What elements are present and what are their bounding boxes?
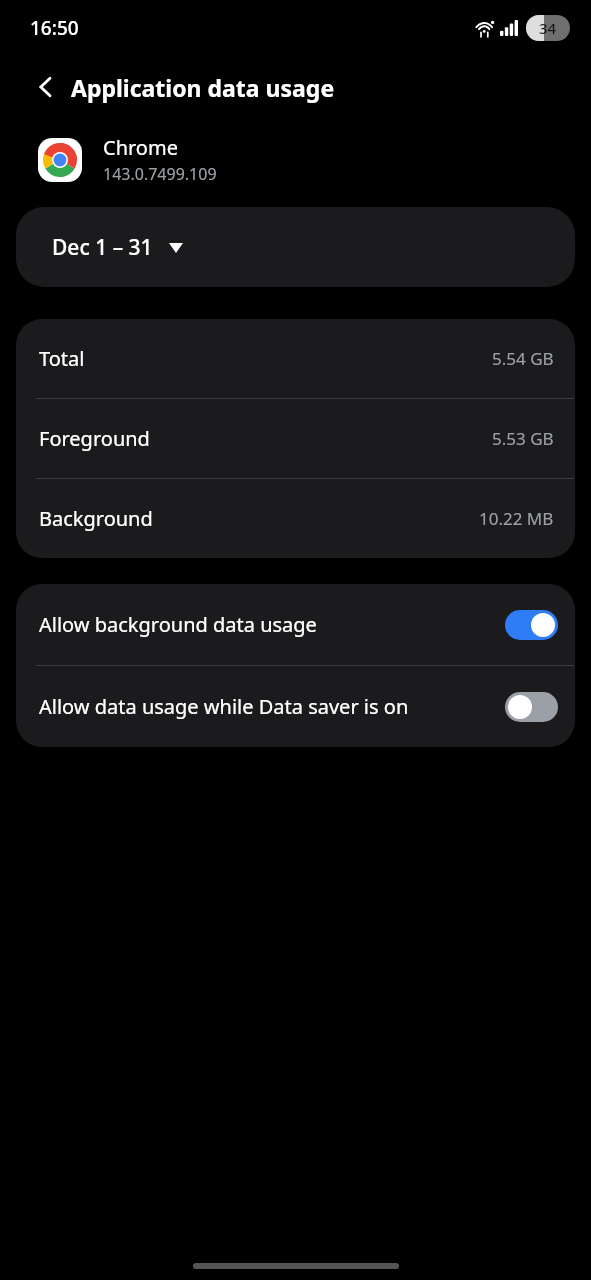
staticText: 5.54 GB (492, 347, 554, 370)
staticText: Allow data usage while Data saver is on (39, 693, 497, 720)
staticText: Background (39, 505, 153, 532)
staticText: Application data usage (71, 72, 335, 103)
staticText: Foreground (39, 425, 150, 452)
button[interactable]: Dec 1 – 31 (16, 207, 575, 287)
button[interactable]: Back (26, 67, 66, 107)
staticText: 5.53 GB (492, 427, 554, 450)
staticText: Total (39, 345, 85, 372)
staticText: 143.0.7499.109 (103, 163, 217, 185)
staticText: Chrome (103, 134, 178, 161)
staticText: 10.22 MB (479, 507, 554, 530)
button[interactable]: Allow data usage while Data saver is on (16, 666, 575, 747)
button[interactable]: Allow background data usage (16, 584, 575, 665)
staticText: Allow background data usage (39, 611, 497, 638)
button[interactable]: Background (16, 479, 575, 558)
staticText: Dec 1 – 31 (52, 233, 153, 262)
button[interactable]: Foreground (16, 399, 575, 478)
staticText: 34 (539, 18, 557, 38)
button[interactable]: Total (16, 319, 575, 398)
staticText: 16:50 (30, 15, 79, 41)
